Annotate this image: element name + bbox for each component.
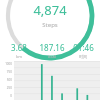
button[interactable]: 3.68 <box>2 42 35 59</box>
staticText: 4,874 <box>33 1 67 19</box>
staticText: 01:46 <box>73 42 94 53</box>
staticText: 时间 <box>79 54 87 59</box>
staticText: 1000 <box>5 62 12 66</box>
staticText: 0 <box>10 94 12 98</box>
staticText: km <box>16 54 22 59</box>
staticText: 500 <box>6 78 12 82</box>
staticText: 750 <box>6 70 12 74</box>
staticText: 187.16 <box>39 42 65 53</box>
button[interactable]: 187.16 <box>35 42 68 59</box>
staticText: 3.68 <box>11 42 27 53</box>
button[interactable]: Step goal progress ring <box>0 0 100 42</box>
staticText: 250 <box>6 86 12 90</box>
staticText: Steps <box>42 21 58 29</box>
button[interactable]: Activity bar chart <box>0 61 100 100</box>
staticText: kcal <box>48 54 56 59</box>
button[interactable]: 01:46 <box>68 42 98 59</box>
